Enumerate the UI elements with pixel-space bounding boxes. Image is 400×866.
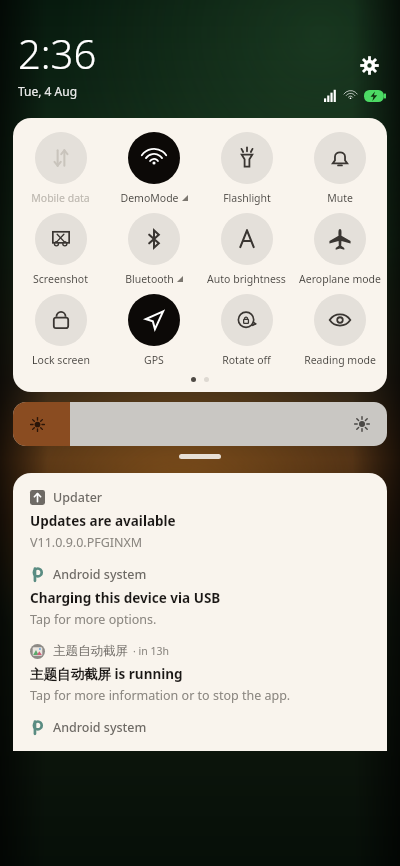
staticText: V11.0.9.0.PFGINXM [30,534,143,551]
button[interactable]: Mute [294,130,385,207]
staticText: Aeroplane mode [299,272,381,286]
staticText: Mobile data [31,191,90,205]
button[interactable]: Reading mode [294,292,385,369]
button[interactable]: Mobile data [15,130,106,207]
button[interactable]: Rotate off [201,292,292,369]
button[interactable]: DemoMode [108,130,199,207]
staticText: Tap for more options. [30,611,157,628]
button[interactable]: Settings [354,50,384,80]
button[interactable]: Screenshot [15,211,106,288]
staticText: Bluetooth [125,272,174,286]
button[interactable]: Android system [13,566,387,643]
staticText: Updater [53,489,103,506]
button[interactable]: 主题自动截屏 [13,643,387,719]
staticText: Rotate off [222,353,271,367]
button[interactable] [13,402,387,446]
staticText: 主题自动截屏 is running [30,665,183,683]
staticText: Charging this device via USB [30,589,221,607]
button[interactable]: Auto brightness [201,211,292,288]
button[interactable]: Bluetooth [108,211,199,288]
staticText: Android system [53,719,147,736]
staticText: Updates are available [30,512,176,530]
staticText: Tap for more information or to stop the … [30,687,291,704]
staticText: 主题自动截屏 [53,643,128,659]
staticText: Lock screen [32,353,90,367]
staticText: GPS [144,353,164,367]
staticText: · in 13h [133,644,169,658]
staticText: Screenshot [33,272,88,286]
button[interactable]: Flashlight [201,130,292,207]
button[interactable]: GPS [108,292,199,369]
button[interactable]: Updater [13,489,387,566]
staticText: Reading mode [304,353,376,367]
button[interactable]: Lock screen [15,292,106,369]
staticText: Mute [327,191,353,205]
button[interactable]: Android system [13,719,387,751]
button[interactable]: Aeroplane mode [294,211,385,288]
staticText: DemoMode [120,191,179,205]
staticText: Android system [53,566,147,583]
staticText: Auto brightness [207,272,286,286]
staticText: Tue, 4 Aug [18,83,78,99]
staticText: 2:36 [18,26,97,80]
staticText: Flashlight [223,191,271,205]
